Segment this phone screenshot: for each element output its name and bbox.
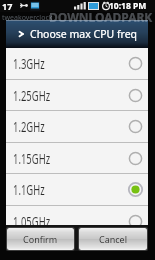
button[interactable]: 1.05GHz — [6, 206, 148, 225]
staticText: 17 — [2, 0, 13, 12]
button[interactable]: 1.1GHz — [6, 174, 148, 205]
button[interactable]: 1.3GHz — [6, 48, 148, 79]
staticText: Choose max CPU freq — [30, 27, 138, 41]
button[interactable]: Choose max CPU freq — [6, 20, 148, 48]
button[interactable]: 1.15GHz — [6, 143, 148, 174]
button[interactable]: Confirm — [7, 228, 74, 250]
button[interactable]: Cancel — [79, 228, 147, 250]
staticText: 1.2GHz — [13, 118, 45, 136]
staticText: 1.3GHz — [13, 55, 45, 73]
button[interactable]: 1.25GHz — [6, 80, 148, 111]
staticText: 1.25GHz — [13, 87, 50, 105]
staticText: Confirm — [23, 233, 58, 245]
staticText: tweakoverclock — [2, 13, 53, 23]
staticText: Cancel — [99, 233, 128, 245]
staticText: 10:18 PM — [109, 0, 147, 12]
staticText: 1.1GHz — [13, 181, 45, 199]
button[interactable]: 1.2GHz — [6, 111, 148, 142]
staticText: 1.15GHz — [13, 150, 50, 168]
staticText: 1.05GHz — [13, 213, 50, 225]
staticText: DOWNLOADPARK — [49, 9, 153, 25]
